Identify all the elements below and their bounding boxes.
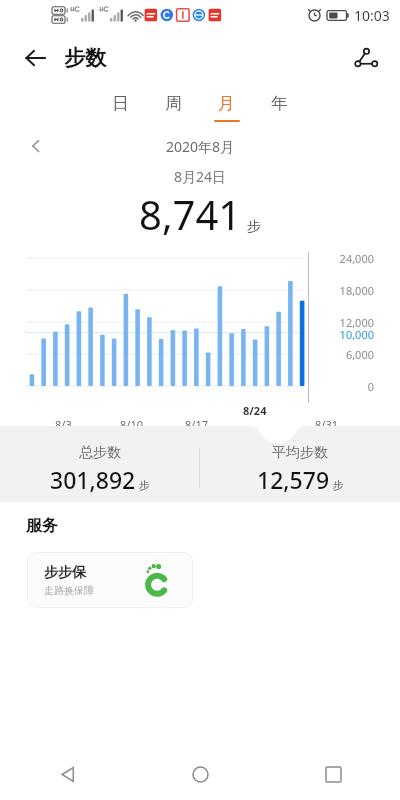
button[interactable]: 年 [253, 86, 306, 130]
button[interactable]: 平均步数 [200, 444, 400, 495]
staticText: 服务 [26, 516, 58, 536]
staticText: 走路换保障 [44, 584, 94, 597]
staticText: 6,000 [312, 347, 374, 362]
staticText: 日 [112, 93, 129, 114]
staticText: 8/31 [315, 417, 338, 432]
button[interactable]: Back [0, 748, 134, 800]
staticText: 步步保 [44, 564, 86, 582]
staticText: 平均步数 [272, 444, 328, 462]
staticText: 步数 [64, 45, 106, 71]
staticText: 2020年8月 [166, 137, 235, 156]
staticText: 0 [312, 379, 374, 394]
staticText: 步 [247, 218, 261, 236]
button[interactable]: 月 [200, 86, 253, 130]
button[interactable]: Recent apps [267, 748, 400, 800]
staticText: 步 [139, 478, 150, 492]
staticText: 18,000 [312, 283, 374, 298]
button[interactable]: 总步数 [0, 444, 199, 495]
staticText: 12,000 [312, 315, 374, 330]
staticText: 8月24日 [174, 167, 227, 186]
staticText: 24,000 [312, 251, 374, 266]
staticText: 301,892 [50, 464, 136, 495]
staticText: 月 [218, 93, 235, 114]
staticText: 周 [165, 93, 182, 114]
button[interactable]: Previous month [20, 130, 52, 162]
staticText: 10,000 [312, 327, 374, 342]
button[interactable]: Home [134, 748, 267, 800]
button[interactable]: Share [346, 38, 386, 78]
staticText: 总步数 [79, 444, 121, 462]
staticText: 10:03 [354, 6, 390, 25]
staticText: 步 [333, 478, 344, 492]
button[interactable]: 周 [147, 86, 200, 130]
button[interactable]: 日 [94, 86, 147, 130]
staticText: 8/10 [120, 417, 143, 432]
staticText: 年 [271, 93, 288, 114]
staticText: 8/3 [55, 417, 72, 432]
staticText: 8,741 [139, 187, 242, 241]
staticText: 8/17 [185, 417, 208, 432]
button[interactable]: 步步保 [27, 552, 193, 608]
button[interactable]: Back [16, 38, 56, 78]
staticText: 8/24 [243, 403, 267, 418]
staticText: 12,579 [257, 464, 330, 495]
